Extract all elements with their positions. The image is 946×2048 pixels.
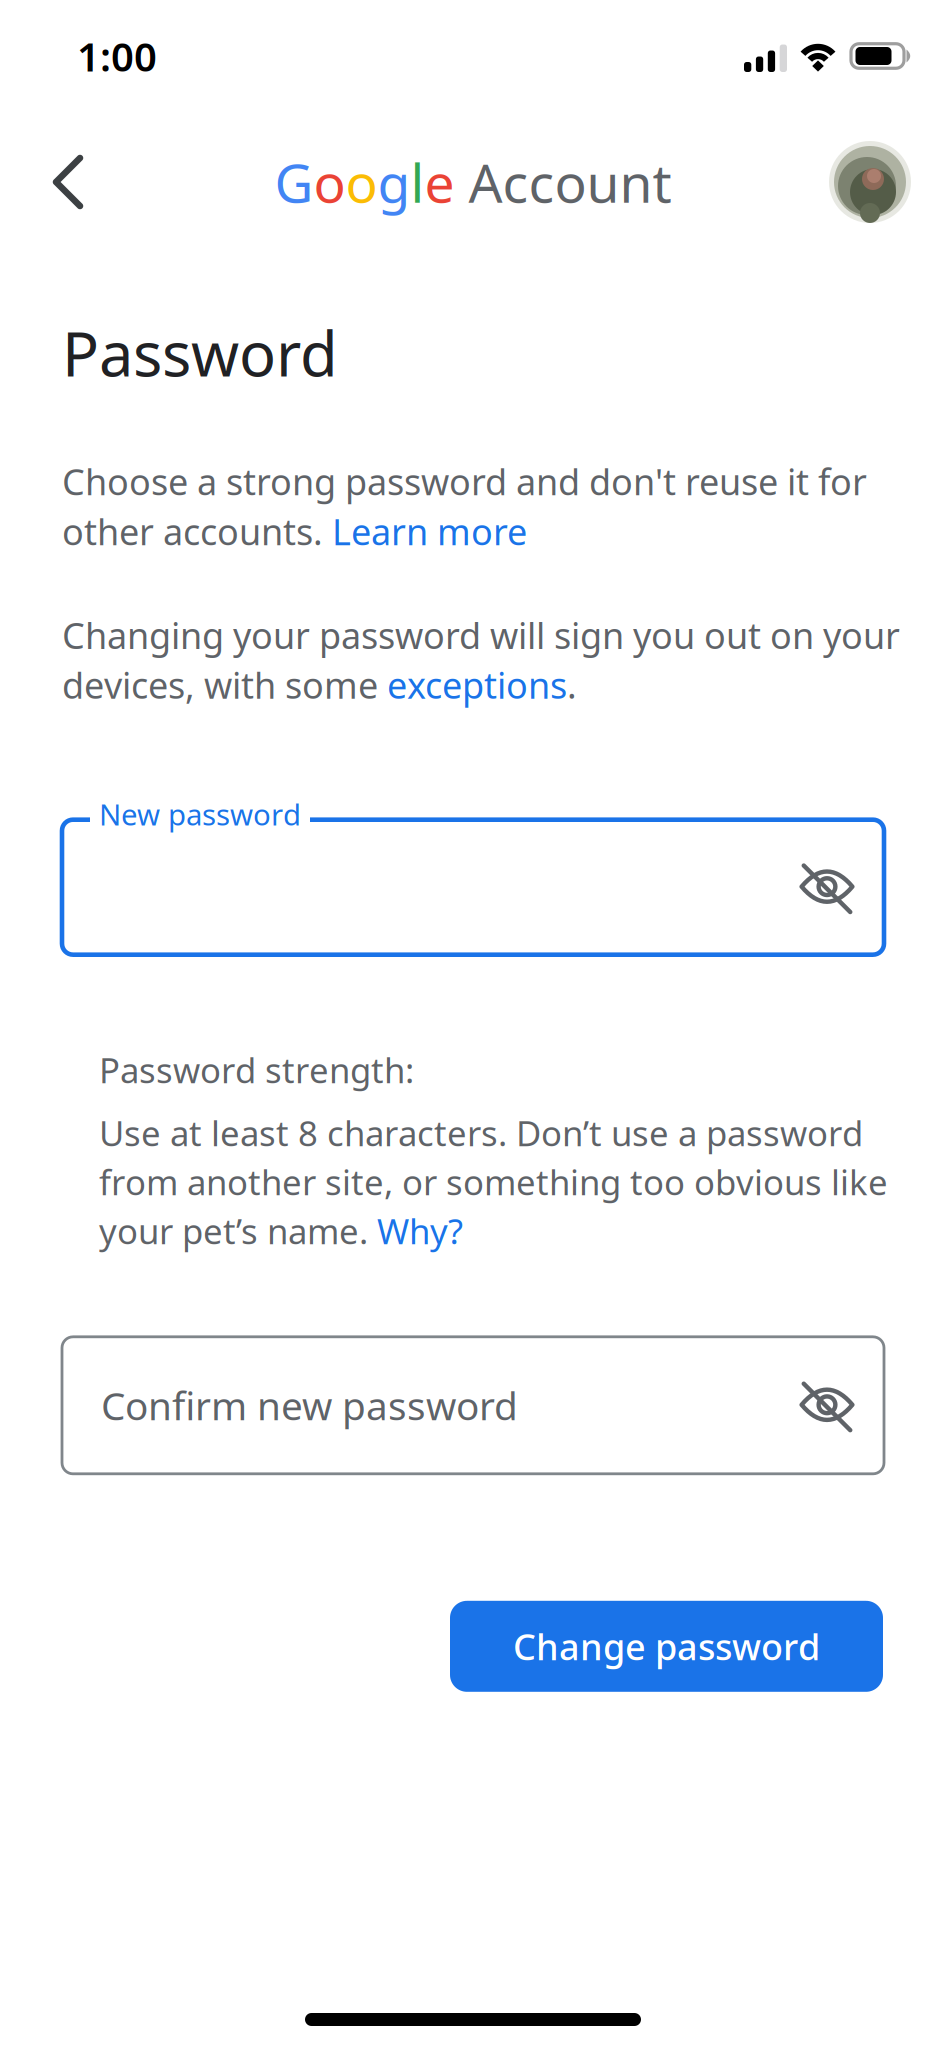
staticText: Use at least 8 characters. Don’t use a p… xyxy=(99,1110,863,1156)
staticText: o xyxy=(345,147,377,217)
staticText: Password xyxy=(62,312,338,393)
button[interactable]: Learn more xyxy=(332,507,527,555)
staticText: other accounts. xyxy=(62,507,332,555)
button[interactable]: Confirm new password xyxy=(62,1337,884,1474)
staticText: Changing your password will sign you out… xyxy=(62,611,900,659)
button[interactable]: Why? xyxy=(377,1208,463,1254)
button[interactable]: exceptions xyxy=(387,661,567,709)
staticText: Confirm new password xyxy=(101,1380,518,1431)
button[interactable]: Google Account profile xyxy=(811,125,946,239)
staticText: Change password xyxy=(513,1622,820,1670)
staticText: Account xyxy=(454,147,671,217)
button[interactable]: Back xyxy=(0,130,104,234)
staticText: Why? xyxy=(377,1208,463,1254)
staticText: from another site, or something too obvi… xyxy=(99,1159,888,1205)
staticText: G xyxy=(274,147,313,217)
staticText: exceptions xyxy=(387,661,567,709)
staticText: Choose a strong password and don't reuse… xyxy=(62,457,867,505)
button[interactable]: Show password xyxy=(800,860,884,914)
staticText: . xyxy=(567,661,577,709)
staticText: Password strength: xyxy=(99,1047,414,1093)
staticText: 1:00 xyxy=(77,29,157,82)
staticText: l xyxy=(410,147,424,217)
button[interactable]: Change password xyxy=(450,1601,883,1692)
staticText: Learn more xyxy=(332,507,527,555)
staticText: New password xyxy=(99,795,301,834)
staticText: devices, with some xyxy=(62,661,387,709)
staticText: g xyxy=(377,147,410,217)
staticText: o xyxy=(313,147,345,217)
staticText: your pet’s name. xyxy=(99,1208,377,1254)
staticText: e xyxy=(424,147,454,217)
